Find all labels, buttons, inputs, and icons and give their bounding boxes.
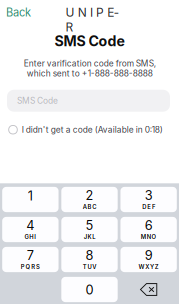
staticText: 1 — [28, 188, 33, 204]
staticText: Back — [6, 6, 31, 19]
staticText: GHI — [25, 233, 36, 240]
button[interactable]: 2 — [61, 187, 118, 212]
staticText: 0 — [85, 282, 93, 298]
staticText: MNO — [141, 233, 156, 240]
staticText: DEF — [142, 203, 155, 210]
button[interactable]: 8 — [61, 247, 118, 272]
staticText: 4 — [26, 218, 34, 233]
staticText: 6 — [145, 218, 153, 233]
staticText: SMS Code — [54, 33, 124, 50]
button[interactable]: I didn't get a code (Available in 0:18) — [0, 124, 179, 136]
staticText: 3 — [145, 188, 153, 203]
button[interactable]: 5 — [61, 217, 118, 242]
staticText: SMS Code — [17, 96, 58, 106]
staticText: 2 — [85, 188, 93, 203]
button[interactable]: 7 — [2, 247, 58, 272]
staticText: 9 — [145, 248, 153, 263]
staticText: PQRS — [21, 263, 40, 270]
staticText: JKL — [84, 233, 95, 240]
staticText: 5 — [85, 218, 93, 233]
button[interactable]: Delete — [120, 277, 177, 302]
button[interactable]: 3 — [120, 187, 177, 212]
staticText: TUV — [83, 263, 96, 270]
staticText: ABC — [83, 203, 96, 210]
button[interactable]: 0 — [61, 277, 118, 302]
button[interactable]: 6 — [120, 217, 177, 242]
staticText: Enter varification code from SMS, which … — [23, 58, 155, 79]
staticText: UNIPER — [65, 5, 125, 20]
staticText: 7 — [27, 248, 34, 263]
button[interactable]: 1 — [2, 187, 58, 212]
button[interactable]: Back — [0, 3, 37, 22]
staticText: 8 — [85, 248, 93, 263]
staticText: I didn't get a code (Available in 0:18) — [22, 125, 163, 135]
button[interactable]: 4 — [2, 217, 58, 242]
staticText: WXYZ — [138, 263, 159, 270]
button[interactable]: 9 — [120, 247, 177, 272]
